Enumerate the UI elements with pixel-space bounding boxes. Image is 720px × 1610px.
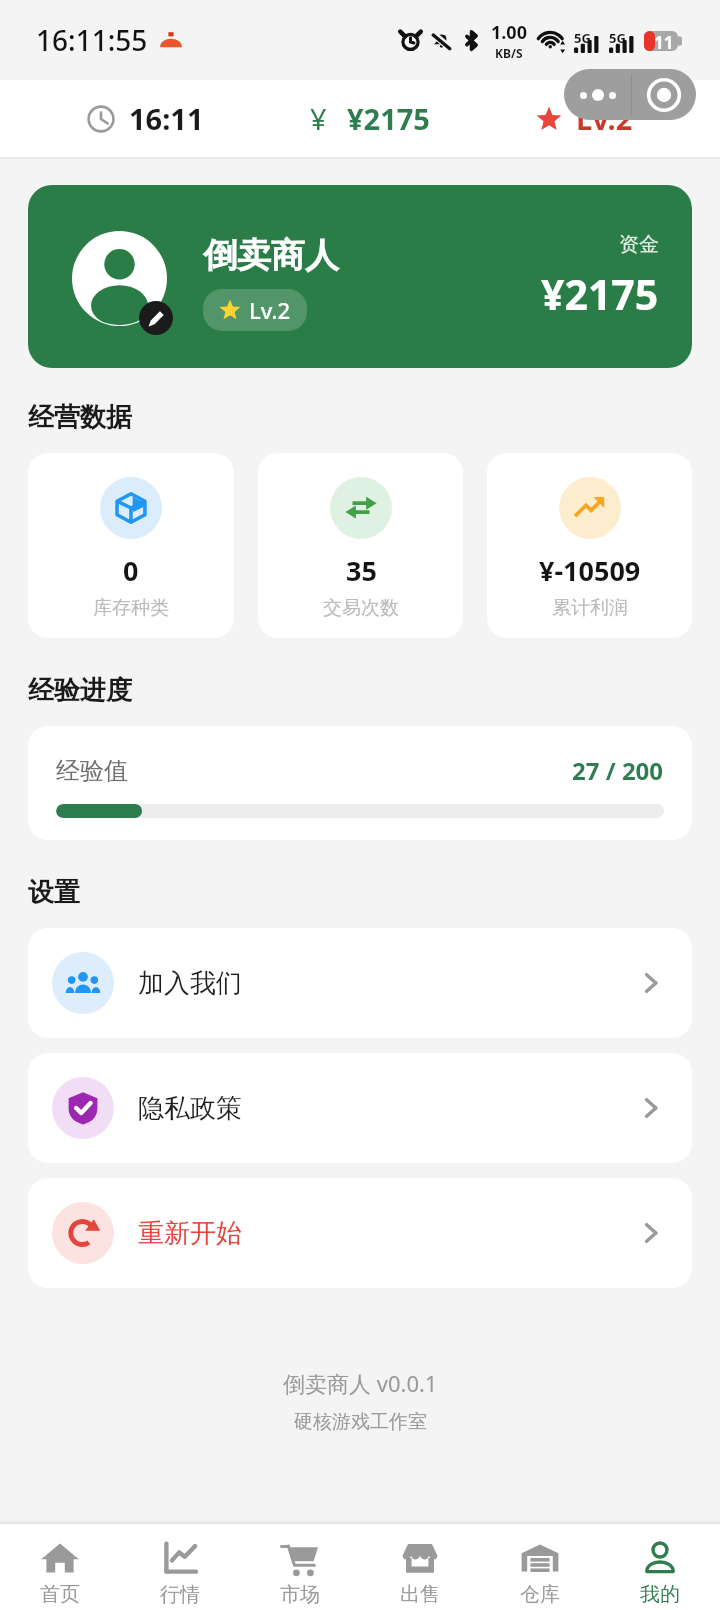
staticText: ¥2175	[347, 99, 430, 138]
staticText: Lv.2	[249, 295, 291, 325]
button[interactable]: Lv.2	[536, 99, 633, 138]
staticText: 16:11	[129, 99, 204, 138]
staticText: 行情	[160, 1582, 200, 1607]
staticText: 硬核游戏工作室	[294, 1410, 427, 1434]
button[interactable]: 首页	[0, 1524, 120, 1610]
staticText: 0	[123, 552, 139, 589]
staticText: 35	[346, 552, 377, 589]
button[interactable]: 重新开始	[28, 1178, 692, 1288]
staticText: 27 / 200	[572, 754, 664, 787]
staticText: 经验进度	[28, 674, 132, 707]
staticText: 资金	[619, 232, 659, 257]
button[interactable]: Edit profile	[139, 301, 173, 335]
staticText: 出售	[400, 1582, 440, 1607]
button[interactable]: ¥-10509	[487, 453, 692, 638]
staticText: 库存种类	[93, 596, 169, 620]
staticText: 倒卖商人 v0.0.1	[283, 1368, 438, 1398]
button[interactable]: 行情	[120, 1524, 240, 1610]
button[interactable]: 隐私政策	[28, 1053, 692, 1163]
staticText: 1.00	[491, 20, 527, 45]
staticText: 首页	[40, 1582, 80, 1607]
staticText: ¥-10509	[539, 552, 641, 589]
button[interactable]: Edit profile	[28, 185, 692, 368]
staticText: 11	[654, 31, 674, 51]
button[interactable]: 16:11	[87, 99, 204, 138]
staticText: 经营数据	[28, 401, 132, 434]
staticText: 我的	[640, 1582, 680, 1607]
staticText: 加入我们	[138, 967, 242, 1000]
staticText: 设置	[28, 876, 80, 909]
staticText: 仓库	[520, 1582, 560, 1607]
staticText: 16:11:55	[36, 21, 148, 59]
button[interactable]: 市场	[240, 1524, 360, 1610]
staticText: 重新开始	[138, 1217, 242, 1250]
staticText: 市场	[280, 1582, 320, 1607]
staticText: 交易次数	[323, 596, 399, 620]
button[interactable]: 仓库	[480, 1524, 600, 1610]
button[interactable]: 0	[28, 453, 234, 638]
button[interactable]: 出售	[360, 1524, 480, 1610]
staticText: Lv.2	[576, 99, 633, 138]
staticText: 倒卖商人	[203, 234, 339, 277]
button[interactable]: 35	[258, 453, 463, 638]
staticText: 隐私政策	[138, 1092, 242, 1125]
staticText: 5G	[574, 29, 591, 47]
staticText: 经验值	[56, 756, 128, 786]
staticText: 累计利润	[552, 596, 628, 620]
button[interactable]: 加入我们	[28, 928, 692, 1038]
staticText: 5G	[609, 29, 626, 47]
button[interactable]: ¥	[310, 99, 430, 138]
staticText: ¥	[310, 99, 327, 138]
staticText: KB/S	[495, 45, 523, 61]
staticText: ¥2175	[541, 266, 659, 322]
button[interactable]: 我的	[600, 1524, 720, 1610]
button[interactable]: Screen recorder overlay	[564, 69, 696, 120]
